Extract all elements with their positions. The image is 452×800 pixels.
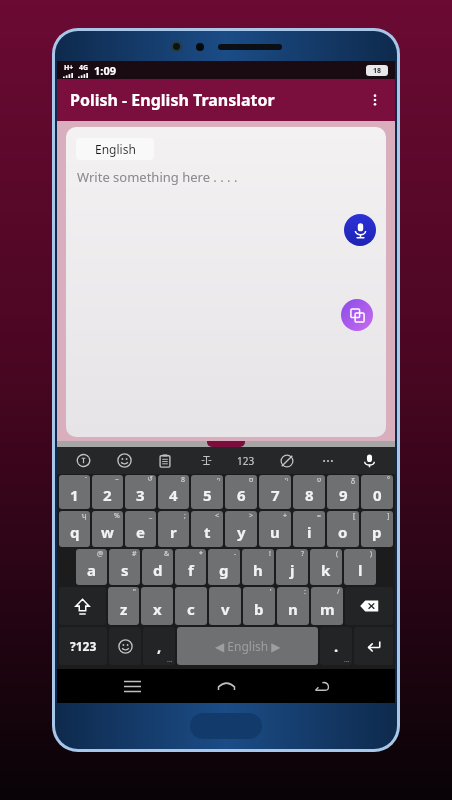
button[interactable]: ʊ	[225, 475, 257, 509]
staticText: d	[153, 560, 163, 580]
staticText: e	[136, 522, 145, 542]
button[interactable]: )	[344, 549, 376, 585]
button[interactable]: Home button	[190, 713, 262, 739]
staticText: [	[353, 511, 356, 521]
button[interactable]: [	[327, 511, 359, 547]
staticText: b	[254, 599, 264, 619]
button[interactable]: #	[109, 549, 140, 585]
button[interactable]: ~	[92, 475, 123, 509]
button[interactable]: Voice	[354, 447, 384, 474]
staticText: `	[85, 475, 87, 485]
button[interactable]: <	[191, 511, 223, 547]
button[interactable]: More options	[355, 80, 395, 120]
button[interactable]: >	[225, 511, 257, 547]
button[interactable]: '	[243, 587, 275, 625]
staticText: Polish - English Translator	[70, 89, 275, 111]
button[interactable]: `	[59, 475, 90, 509]
button[interactable]: ᵹ	[327, 475, 359, 509]
button[interactable]: _	[125, 511, 156, 547]
staticText: r	[170, 522, 177, 542]
button[interactable]: &	[142, 549, 173, 585]
button[interactable]: ?	[276, 549, 308, 585]
button[interactable]: Voice input	[344, 214, 376, 246]
button[interactable]: v	[209, 587, 241, 625]
staticText: °	[387, 475, 390, 485]
staticText: ʊ	[249, 475, 254, 485]
button[interactable]: ᶯ	[191, 475, 223, 509]
button[interactable]: ᶯ	[259, 475, 291, 509]
button[interactable]: ,	[143, 627, 175, 665]
button[interactable]: %	[92, 511, 123, 547]
button[interactable]: Backspace	[345, 587, 393, 625]
button[interactable]: 8	[158, 475, 189, 509]
button[interactable]: °	[361, 475, 393, 509]
button[interactable]: (	[310, 549, 342, 585]
staticText: English	[95, 141, 136, 157]
button[interactable]: "	[108, 587, 139, 625]
button[interactable]: :	[277, 587, 309, 625]
staticText: ]	[387, 511, 390, 521]
button[interactable]: Text edit	[191, 447, 221, 474]
button[interactable]: Emoji	[109, 627, 141, 665]
staticText: =	[317, 511, 322, 521]
staticText: ᶯ	[217, 475, 220, 485]
button[interactable]: More	[313, 447, 343, 474]
staticText: l	[358, 560, 363, 580]
staticText: ʋ	[317, 475, 322, 485]
staticText: ?	[301, 549, 305, 559]
button[interactable]: =	[293, 511, 325, 547]
staticText: q	[70, 522, 80, 542]
button[interactable]: ?123	[59, 627, 107, 665]
button[interactable]: ʮ	[59, 511, 90, 547]
button[interactable]: ↺	[125, 475, 156, 509]
button[interactable]: c	[175, 587, 207, 625]
staticText: j	[290, 560, 295, 580]
staticText: ◀ English ▶	[215, 638, 281, 654]
button[interactable]: ;	[158, 511, 189, 547]
staticText: z	[120, 599, 128, 619]
button[interactable]: Shift	[59, 587, 106, 625]
button[interactable]: x	[141, 587, 173, 625]
button[interactable]: +	[259, 511, 291, 547]
staticText: Write something here . . . .	[77, 168, 238, 186]
button[interactable]: Translate	[68, 447, 98, 474]
button[interactable]: Clipboard	[150, 447, 180, 474]
staticText: y	[237, 522, 246, 542]
staticText: :	[304, 587, 306, 597]
staticText: 5	[203, 485, 212, 505]
staticText: &	[164, 549, 170, 559]
staticText: 123	[237, 454, 255, 468]
staticText: x	[153, 599, 162, 619]
staticText: 7	[271, 485, 280, 505]
button[interactable]: Back	[301, 669, 341, 703]
button[interactable]: Emoji	[109, 447, 139, 474]
staticText: +	[283, 511, 288, 521]
button[interactable]: !	[242, 549, 274, 585]
button[interactable]: Theme	[272, 447, 302, 474]
button[interactable]: *	[175, 549, 206, 585]
button[interactable]: -	[208, 549, 240, 585]
button[interactable]: Enter	[354, 627, 393, 665]
staticText: c	[187, 599, 195, 619]
button[interactable]: @	[76, 549, 107, 585]
staticText: a	[87, 560, 96, 580]
button[interactable]: Home	[206, 669, 246, 703]
button[interactable]: ʋ	[293, 475, 325, 509]
staticText: ,	[157, 636, 162, 656]
staticText: 9	[339, 485, 348, 505]
staticText: u	[270, 522, 280, 542]
button[interactable]: English	[76, 138, 154, 160]
button[interactable]: ]	[361, 511, 393, 547]
staticText: H+	[64, 63, 74, 73]
button[interactable]: ◀ English ▶	[177, 627, 318, 665]
staticText: 4	[169, 485, 178, 505]
button[interactable]: /	[311, 587, 343, 625]
staticText: 8	[181, 475, 186, 485]
button[interactable]: .	[320, 627, 352, 665]
staticText: ;	[184, 511, 186, 521]
staticText: 1:09	[94, 63, 116, 78]
staticText: 3	[136, 485, 145, 505]
button[interactable]: Numbers	[231, 447, 261, 474]
button[interactable]: Recent apps	[112, 669, 152, 703]
button[interactable]: Copy	[341, 299, 373, 331]
